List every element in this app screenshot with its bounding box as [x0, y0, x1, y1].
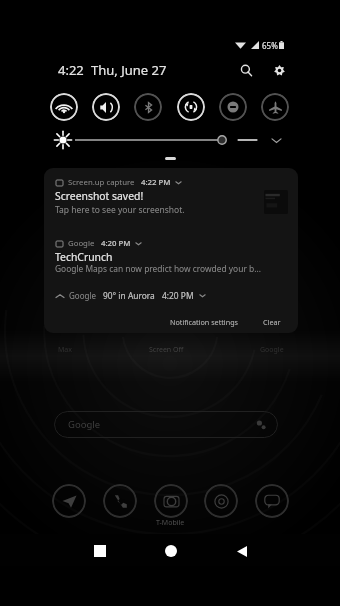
staticText: Max [58, 345, 72, 355]
button[interactable]: Auto rotate [177, 93, 205, 121]
button[interactable]: Phone [103, 484, 137, 518]
button[interactable]: Chrome [204, 484, 238, 518]
button[interactable]: Bluetooth [134, 93, 162, 121]
staticText: Google [69, 290, 96, 301]
staticText: 65% [262, 40, 278, 50]
staticText: Tap here to see your screenshot. [55, 204, 185, 216]
button[interactable]: Telegram [52, 484, 86, 518]
staticText: 90° in Aurora [103, 290, 155, 301]
staticText: Screen Off [149, 345, 184, 355]
staticText: Google [68, 238, 95, 249]
staticText: Google Maps can now predict how crowded … [55, 263, 293, 274]
button[interactable]: Back [230, 539, 254, 563]
button[interactable]: Expand [268, 132, 284, 148]
staticText: Notification settings [170, 317, 239, 327]
button[interactable]: Search [236, 60, 256, 80]
staticText: 4:20 PM [101, 238, 131, 249]
button[interactable]: Sound [92, 93, 120, 121]
staticText: Google [68, 418, 101, 431]
staticText: TechCrunch [55, 250, 113, 264]
button[interactable]: Home [159, 539, 183, 563]
button[interactable]: Notification settings [167, 314, 242, 330]
staticText: T-Mobile [156, 518, 185, 528]
button[interactable]: Settings [269, 60, 289, 80]
button[interactable]: Recent apps [88, 539, 112, 563]
button[interactable]: Camera [154, 484, 188, 518]
staticText: Thu, June 27 [91, 61, 167, 79]
staticText: Google [260, 345, 284, 355]
button[interactable]: Google [54, 411, 278, 438]
button[interactable]: Airplane mode [261, 93, 289, 121]
button[interactable]: Messages [255, 484, 289, 518]
staticText: 4:22 [58, 61, 84, 79]
button[interactable]: Do not disturb [219, 93, 247, 121]
staticText: 4:20 PM [162, 290, 194, 301]
staticText: Screen.up capture [68, 177, 135, 188]
button[interactable]: Wi-Fi [50, 93, 78, 121]
staticText: Screenshot saved! [55, 189, 144, 203]
button[interactable]: Clear [260, 314, 284, 330]
staticText: Clear [263, 317, 281, 327]
staticText: 4:22 PM [141, 177, 171, 188]
